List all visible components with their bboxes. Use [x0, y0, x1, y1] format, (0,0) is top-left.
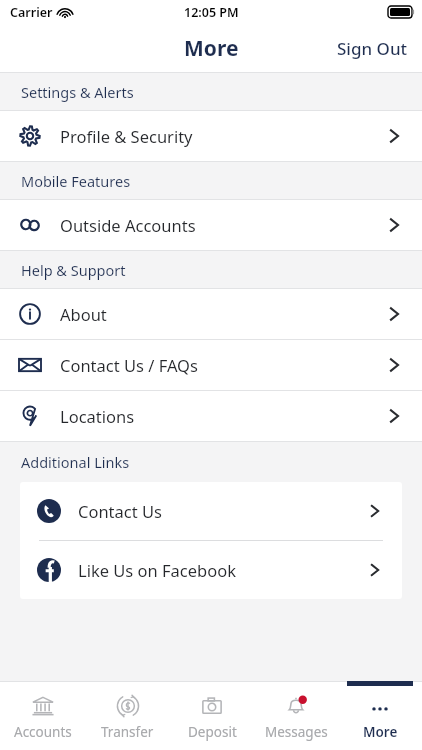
staticText: More — [363, 723, 398, 741]
staticText: 12:05 PM — [184, 4, 239, 21]
button[interactable]: Messages — [254, 681, 338, 750]
button[interactable]: More — [338, 681, 422, 750]
button[interactable]: Deposit — [170, 681, 254, 750]
staticText: Mobile Features — [21, 171, 131, 191]
staticText: Messages — [265, 723, 328, 741]
staticText: Like Us on Facebook — [78, 559, 370, 581]
staticText: Accounts — [14, 723, 72, 741]
staticText: Help & Support — [21, 260, 126, 280]
staticText: Outside Accounts — [60, 214, 389, 236]
staticText: Locations — [60, 405, 389, 427]
button[interactable]: Profile & Security — [0, 111, 422, 161]
staticText: Settings & Alerts — [21, 82, 134, 102]
button[interactable]: Sign Out — [323, 29, 422, 68]
staticText: More — [184, 34, 239, 63]
button[interactable]: Contact Us / FAQs — [0, 340, 422, 390]
staticText: Contact Us — [78, 500, 370, 522]
staticText: Carrier — [10, 4, 53, 21]
button[interactable]: Locations — [0, 391, 422, 441]
button[interactable]: About — [0, 289, 422, 339]
button[interactable]: Transfer — [85, 681, 170, 750]
staticText: Deposit — [188, 723, 237, 741]
staticText: Profile & Security — [60, 125, 389, 147]
staticText: About — [60, 303, 389, 325]
staticText: Additional Links — [21, 452, 130, 472]
staticText: Contact Us / FAQs — [60, 354, 389, 376]
button[interactable]: Accounts — [0, 681, 85, 750]
staticText: Transfer — [101, 723, 154, 741]
button[interactable]: Outside Accounts — [0, 200, 422, 250]
staticText: Sign Out — [337, 37, 408, 60]
button[interactable]: Like Us on Facebook — [20, 541, 402, 599]
button[interactable]: Contact Us — [20, 482, 402, 540]
